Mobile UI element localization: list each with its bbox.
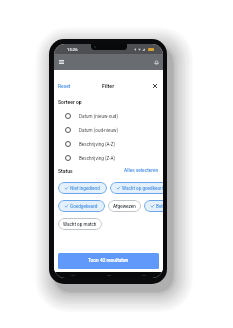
button[interactable]: Betaald	[144, 200, 163, 212]
button[interactable]: Toon 42 resultaten	[58, 253, 159, 269]
button[interactable]: Wacht op match	[58, 218, 102, 230]
staticText: Filter	[102, 83, 115, 89]
staticText: Toon 42 resultaten	[88, 258, 129, 264]
staticText: Alles selecteren	[124, 168, 159, 174]
staticText: Goedgekeurd	[70, 204, 98, 209]
button[interactable]: Goedgekeurd	[58, 200, 105, 212]
button[interactable]: Notifications	[151, 57, 161, 67]
staticText: Beschrijving (Z-A)	[79, 156, 116, 161]
staticText: Wacht op match	[63, 222, 97, 227]
button[interactable]: Menu	[56, 57, 66, 67]
staticText: Status	[58, 168, 73, 174]
staticText: Datum (oud-nieuw)	[79, 128, 118, 133]
staticText: Betaald	[156, 204, 163, 209]
button[interactable]: Beschrijving (Z-A)	[58, 151, 159, 165]
button[interactable]: Niet ingediend	[58, 182, 107, 194]
button[interactable]: Close	[151, 82, 159, 90]
staticText: 15:26	[67, 47, 78, 52]
button[interactable]: Wacht op goedkeuring	[110, 182, 163, 194]
button[interactable]: Datum (oud-nieuw)	[58, 123, 159, 137]
staticText: Niet ingediend	[70, 186, 100, 191]
button[interactable]: Afgewezen	[108, 200, 141, 212]
staticText: Afgewezen	[113, 204, 136, 209]
staticText: Beschrijving (A-Z)	[79, 142, 116, 147]
staticText: Datum (nieuw-oud)	[79, 114, 118, 119]
button[interactable]: Datum (nieuw-oud)	[58, 109, 159, 123]
staticText: Sorteer op	[58, 99, 82, 105]
button[interactable]: Beschrijving (A-Z)	[58, 137, 159, 151]
staticText: Wacht op goedkeuring	[122, 186, 163, 191]
button[interactable]: Reset	[58, 83, 71, 89]
staticText: Reset	[58, 83, 71, 89]
button[interactable]: Alles selecteren	[124, 168, 159, 174]
